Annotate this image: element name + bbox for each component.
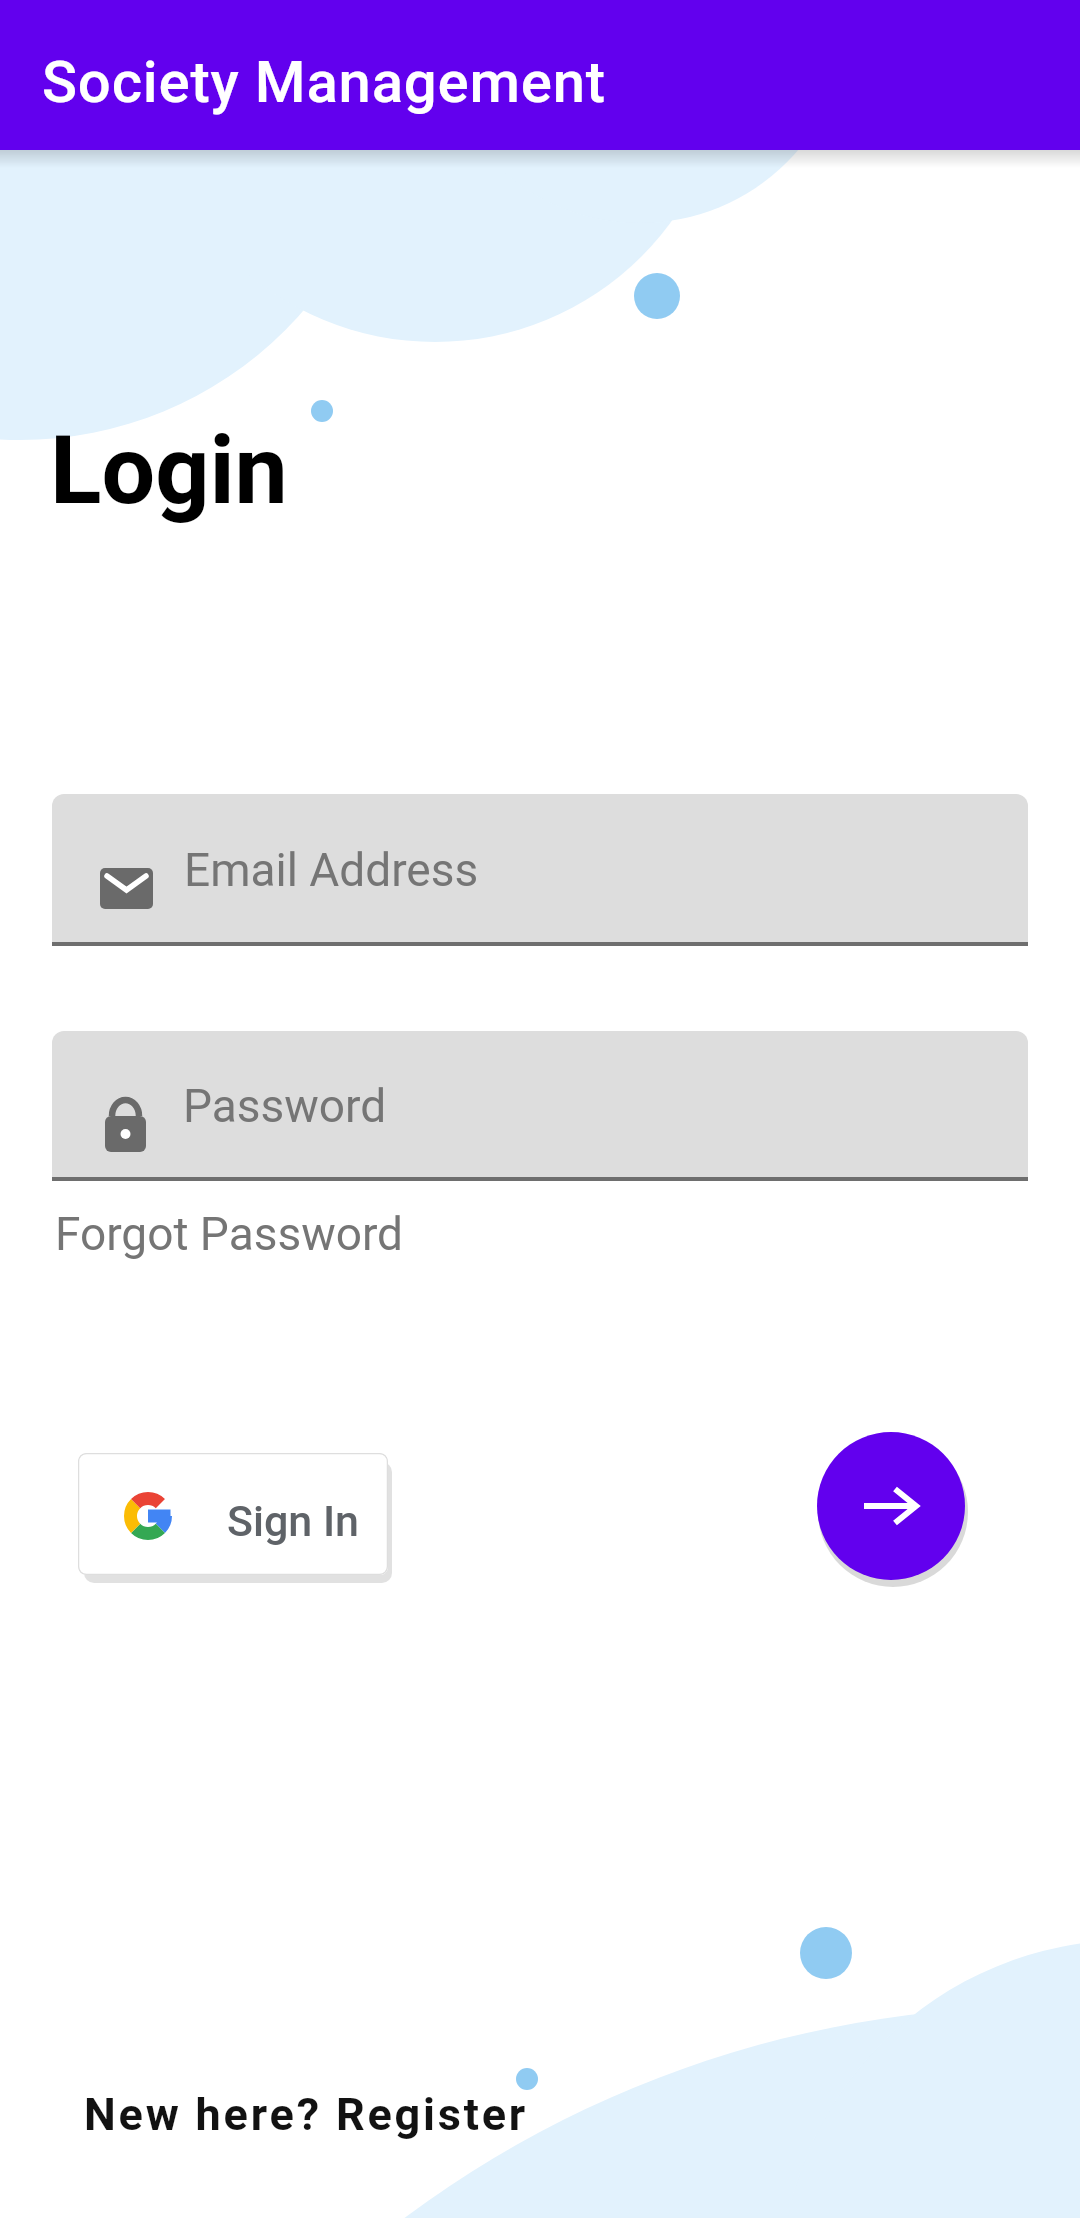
button[interactable]: Forgot Password [55, 1207, 404, 1261]
staticText: Email Address [184, 843, 479, 897]
button[interactable]: Email Address [52, 794, 1028, 946]
button[interactable] [817, 1432, 965, 1580]
button[interactable]: New here? Register [84, 2088, 529, 2141]
staticText: Login [50, 415, 288, 526]
staticText: Society Management [42, 48, 606, 116]
button[interactable]: Sign In [78, 1453, 388, 1575]
staticText: Password [183, 1079, 387, 1133]
button[interactable]: Password [52, 1031, 1028, 1181]
staticText: Sign In [227, 1496, 360, 1546]
